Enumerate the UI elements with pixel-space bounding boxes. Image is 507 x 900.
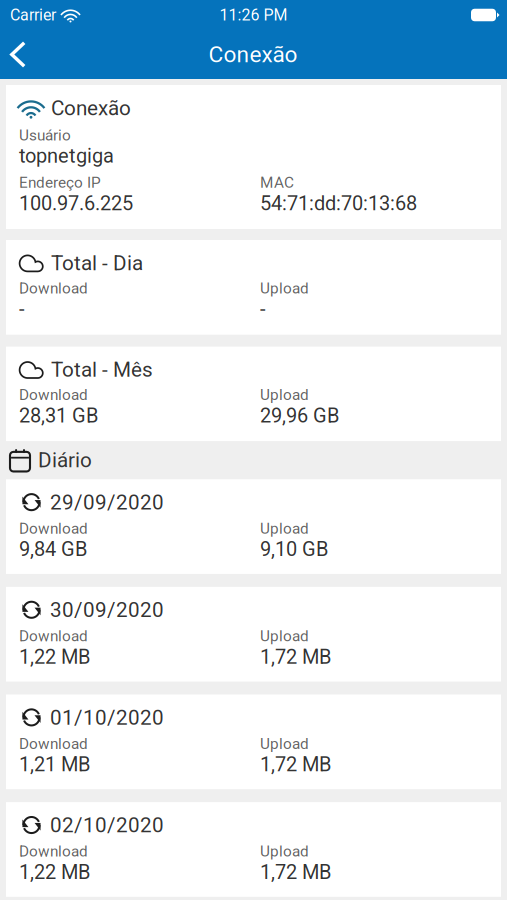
staticText: Usuário [19,126,71,144]
staticText: MAC [260,174,294,192]
staticText: 1,22 MB [19,860,90,884]
staticText: 02/10/2020 [50,813,164,837]
staticText: 1,72 MB [260,645,331,668]
staticText: Upload [260,519,309,537]
button[interactable]: 02/10/2020 [6,802,501,897]
staticText: - [260,297,266,321]
staticText: 1,72 MB [260,753,331,776]
staticText: Upload [260,627,309,645]
staticText: topnetgiga [19,144,114,168]
staticText: Total - Dia [51,251,143,275]
button[interactable]: 01/10/2020 [6,694,501,789]
staticText: 9,84 GB [19,537,87,561]
staticText: Conexão [51,96,131,120]
staticText: 1,21 MB [19,753,90,776]
staticText: 29,96 GB [260,404,339,427]
staticText: 100.97.6.225 [19,192,133,215]
staticText: Conexão [208,41,297,68]
staticText: - [19,297,25,321]
staticText: 1,72 MB [260,860,331,884]
button[interactable]: 30/09/2020 [6,587,501,681]
staticText: Download [19,279,88,297]
staticText: 11:26 PM [219,6,287,24]
staticText: Download [19,842,88,860]
staticText: 28,31 GB [19,404,98,427]
staticText: Download [19,519,88,537]
staticText: Upload [260,735,309,753]
staticText: Upload [260,279,309,297]
staticText: 30/09/2020 [50,598,164,622]
staticText: 01/10/2020 [50,705,164,730]
staticText: Download [19,735,88,753]
staticText: 29/09/2020 [50,490,164,514]
staticText: Total - Mês [51,358,153,382]
staticText: Carrier [10,6,56,24]
staticText: Diário [38,448,92,472]
staticText: 9,10 GB [260,537,328,561]
staticText: 54:71:dd:70:13:68 [260,192,417,215]
staticText: Upload [260,842,309,860]
button[interactable]: Back [0,30,40,79]
button[interactable]: 29/09/2020 [6,479,501,574]
staticText: Download [19,627,88,645]
staticText: Upload [260,386,309,404]
staticText: 1,22 MB [19,645,90,668]
staticText: Endereço IP [19,174,101,192]
staticText: Download [19,386,88,404]
